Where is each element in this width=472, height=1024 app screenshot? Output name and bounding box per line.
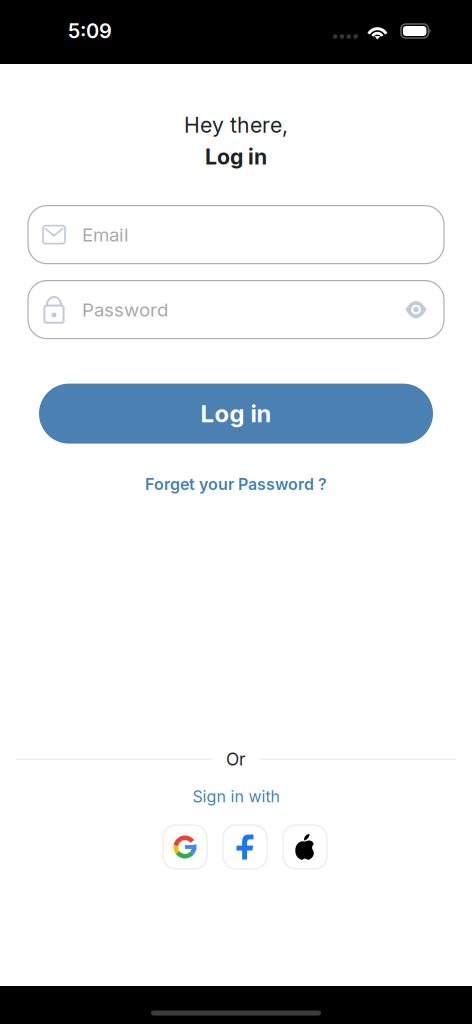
- staticText: Hey there,: [184, 112, 288, 138]
- staticText: 5:09: [68, 19, 112, 43]
- staticText: Password: [82, 298, 168, 321]
- staticText: Log in: [200, 399, 271, 428]
- staticText: Log in: [205, 144, 267, 170]
- button[interactable]: Sign in with Apple: [283, 825, 327, 869]
- staticText: Forget your Password ?: [145, 475, 327, 494]
- button[interactable]: Log in: [39, 384, 433, 444]
- button[interactable]: Sign in with Facebook: [223, 825, 267, 869]
- button[interactable]: Show password: [398, 295, 434, 324]
- staticText: Sign in with: [192, 787, 279, 806]
- button[interactable]: Forget your Password ?: [137, 470, 335, 499]
- button[interactable]: Sign in with Google: [163, 825, 207, 869]
- staticText: Email: [82, 223, 129, 246]
- staticText: Or: [226, 749, 246, 770]
